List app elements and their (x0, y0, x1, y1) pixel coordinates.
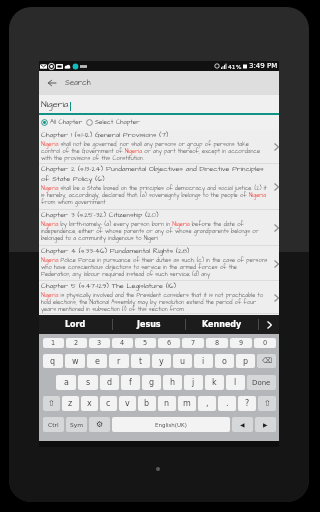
button[interactable]: Kennedy (186, 315, 258, 334)
button[interactable]: c (100, 396, 117, 411)
button[interactable]: 2 (66, 338, 87, 348)
staticText: w (72, 357, 79, 366)
button[interactable]: Ctrl (43, 417, 64, 432)
button[interactable]: y (152, 354, 171, 368)
staticText: ⌫ (262, 357, 272, 365)
button[interactable]: Chapter 1 (s.1–12) General Provisions (7… (39, 130, 279, 164)
button[interactable]: ⌫ (257, 354, 276, 368)
button[interactable]: 3 (89, 338, 110, 348)
staticText: Nigeria Police Force in pursuance of the… (41, 256, 268, 278)
button[interactable]: k (205, 375, 224, 390)
staticText: Chapter 1 (s.1–12) General Provisions (7… (41, 130, 169, 140)
button[interactable]: , (198, 396, 216, 411)
button[interactable]: ⇧ (258, 396, 276, 411)
button[interactable]: Select Chapter (86, 118, 140, 127)
staticText: Chapter 3 (s.25–32) Citizenship (20) (41, 210, 159, 220)
button[interactable]: r (109, 354, 129, 368)
staticText: Nigeria shall not be governed, nor shall… (41, 140, 268, 162)
button[interactable]: i (194, 354, 213, 368)
button[interactable]: q (43, 354, 63, 368)
button[interactable]: h (163, 375, 182, 390)
button[interactable]: ? (238, 396, 256, 411)
button[interactable]: ⚙ (89, 417, 110, 432)
staticText: y (159, 357, 164, 366)
staticText: d (107, 378, 113, 387)
staticText: Sym (70, 421, 84, 428)
button[interactable]: Jesus (113, 315, 185, 334)
button[interactable]: j (184, 375, 203, 390)
button[interactable]: 7 (182, 338, 204, 348)
staticText: ⇧ (264, 399, 271, 408)
button[interactable]: Chapter 5 (s.47–129) The Legislature (16… (39, 281, 279, 314)
button[interactable]: p (236, 354, 255, 368)
staticText: b (144, 399, 150, 408)
button[interactable]: 6 (158, 338, 180, 348)
button[interactable]: n (158, 396, 176, 411)
staticText: c (106, 399, 111, 408)
button[interactable]: Chapter 4 (s.33–46) Fundamental Rights (… (39, 246, 279, 281)
button[interactable]: b (138, 396, 156, 411)
button[interactable]: 8 (206, 338, 228, 348)
staticText: v (125, 399, 130, 408)
button[interactable]: Chapter 2 (s.13–24) Fundamental Objectiv… (39, 164, 279, 210)
button[interactable]: d (100, 375, 119, 390)
button[interactable]: v (119, 396, 136, 411)
staticText: p (243, 357, 249, 366)
button[interactable]: m (178, 396, 196, 411)
button[interactable]: t (131, 354, 150, 368)
button[interactable]: Back (39, 71, 63, 95)
button[interactable]: g (142, 375, 161, 390)
staticText: All Chapter (50, 118, 83, 127)
staticText: Ctrl (48, 421, 59, 428)
button[interactable]: 5 (135, 338, 156, 348)
button[interactable]: x (81, 396, 98, 411)
staticText: Nigeria shall be a State based on the pr… (41, 184, 268, 206)
staticText: x (87, 399, 92, 408)
button[interactable]: 1 (43, 338, 64, 348)
staticText: z (68, 399, 73, 408)
button[interactable]: 0 (254, 338, 276, 348)
button[interactable]: All Chapter (41, 118, 83, 127)
button[interactable]: a (56, 375, 76, 390)
button[interactable]: Lord (39, 315, 112, 334)
staticText: f (129, 378, 132, 387)
staticText: h (170, 378, 176, 387)
button[interactable]: Chapter 3 (s.25–32) Citizenship (20) (39, 210, 279, 246)
button[interactable]: o (215, 354, 234, 368)
button[interactable]: Done (247, 375, 276, 390)
button[interactable]: f (121, 375, 140, 390)
button[interactable]: Sym (66, 417, 87, 432)
staticText: 4 (120, 339, 125, 347)
staticText: u (180, 357, 186, 366)
staticText: 7 (191, 339, 196, 347)
staticText: q (50, 357, 56, 366)
button[interactable]: z (62, 396, 79, 411)
button[interactable]: e (87, 354, 107, 368)
staticText: a (64, 378, 69, 387)
staticText: Nigeria by birth-namely- (a) every perso… (41, 220, 268, 242)
staticText: 6 (167, 339, 172, 347)
staticText: ⚙ (96, 420, 104, 429)
button[interactable]: More suggestions (259, 315, 279, 334)
button[interactable]: . (218, 396, 236, 411)
staticText: i (202, 357, 205, 366)
button[interactable]: 4 (112, 338, 133, 348)
staticText: l (234, 378, 237, 387)
staticText: s (86, 378, 91, 387)
staticText: Search (65, 78, 91, 89)
button[interactable]: w (65, 354, 85, 368)
button[interactable]: l (226, 375, 245, 390)
staticText: Chapter 5 (s.47–129) The Legislature (16… (41, 281, 176, 291)
staticText: , (206, 399, 209, 408)
button[interactable]: u (173, 354, 192, 368)
button[interactable]: ◀ (232, 417, 253, 432)
button[interactable]: 9 (230, 338, 252, 348)
button[interactable]: English(UK) (112, 417, 230, 432)
staticText: k (212, 378, 217, 387)
staticText: 3:49 PM (249, 62, 278, 70)
staticText: 9 (239, 339, 244, 347)
button[interactable]: s (78, 375, 98, 390)
staticText: Nigeria (41, 98, 69, 111)
button[interactable]: ⇧ (43, 396, 60, 411)
button[interactable]: ▶ (255, 417, 276, 432)
